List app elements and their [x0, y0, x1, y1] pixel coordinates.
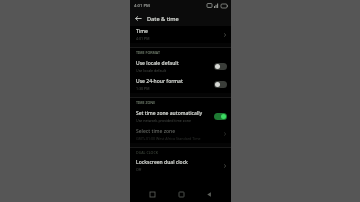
button[interactable]: Toggle off: [214, 63, 227, 70]
button[interactable]: Home: [174, 187, 188, 201]
staticText: Use 24-hour format: [136, 78, 183, 85]
staticText: Lockscreen dual clock: [136, 159, 188, 166]
staticText: 4:01 PM: [134, 3, 150, 9]
button[interactable]: Back: [133, 13, 144, 24]
button[interactable]: Time: [130, 26, 231, 43]
staticText: Time: [136, 28, 148, 35]
button[interactable]: Recents: [145, 187, 159, 201]
staticText: TIME ZONE: [136, 100, 156, 105]
staticText: DUAL CLOCK: [136, 150, 158, 155]
staticText: 1:30 PM: [136, 86, 150, 91]
staticText: Use network-provided time zone: [136, 118, 191, 123]
staticText: Select time zone: [136, 128, 176, 135]
staticText: TIME FORMAT: [136, 50, 160, 55]
staticText: Use locale default: [136, 68, 166, 73]
button[interactable]: Toggle on: [214, 113, 227, 120]
staticText: Set time zone automatically: [136, 110, 203, 117]
staticText: 4:01 PM: [136, 36, 150, 41]
staticText: Date & time: [147, 15, 179, 23]
staticText: GMT+01:00 West Africa Standard Time: [136, 136, 201, 141]
button[interactable]: Select time zone: [130, 125, 231, 143]
button[interactable]: Set time zone automatically: [130, 107, 231, 125]
staticText: Use locale default: [136, 60, 179, 67]
button[interactable]: Back: [202, 187, 216, 201]
button[interactable]: Toggle off: [214, 81, 227, 88]
button[interactable]: Use locale default: [130, 57, 231, 75]
button[interactable]: Lockscreen dual clock: [130, 157, 231, 174]
button[interactable]: Use 24-hour format: [130, 75, 231, 93]
staticText: Off: [136, 167, 142, 172]
